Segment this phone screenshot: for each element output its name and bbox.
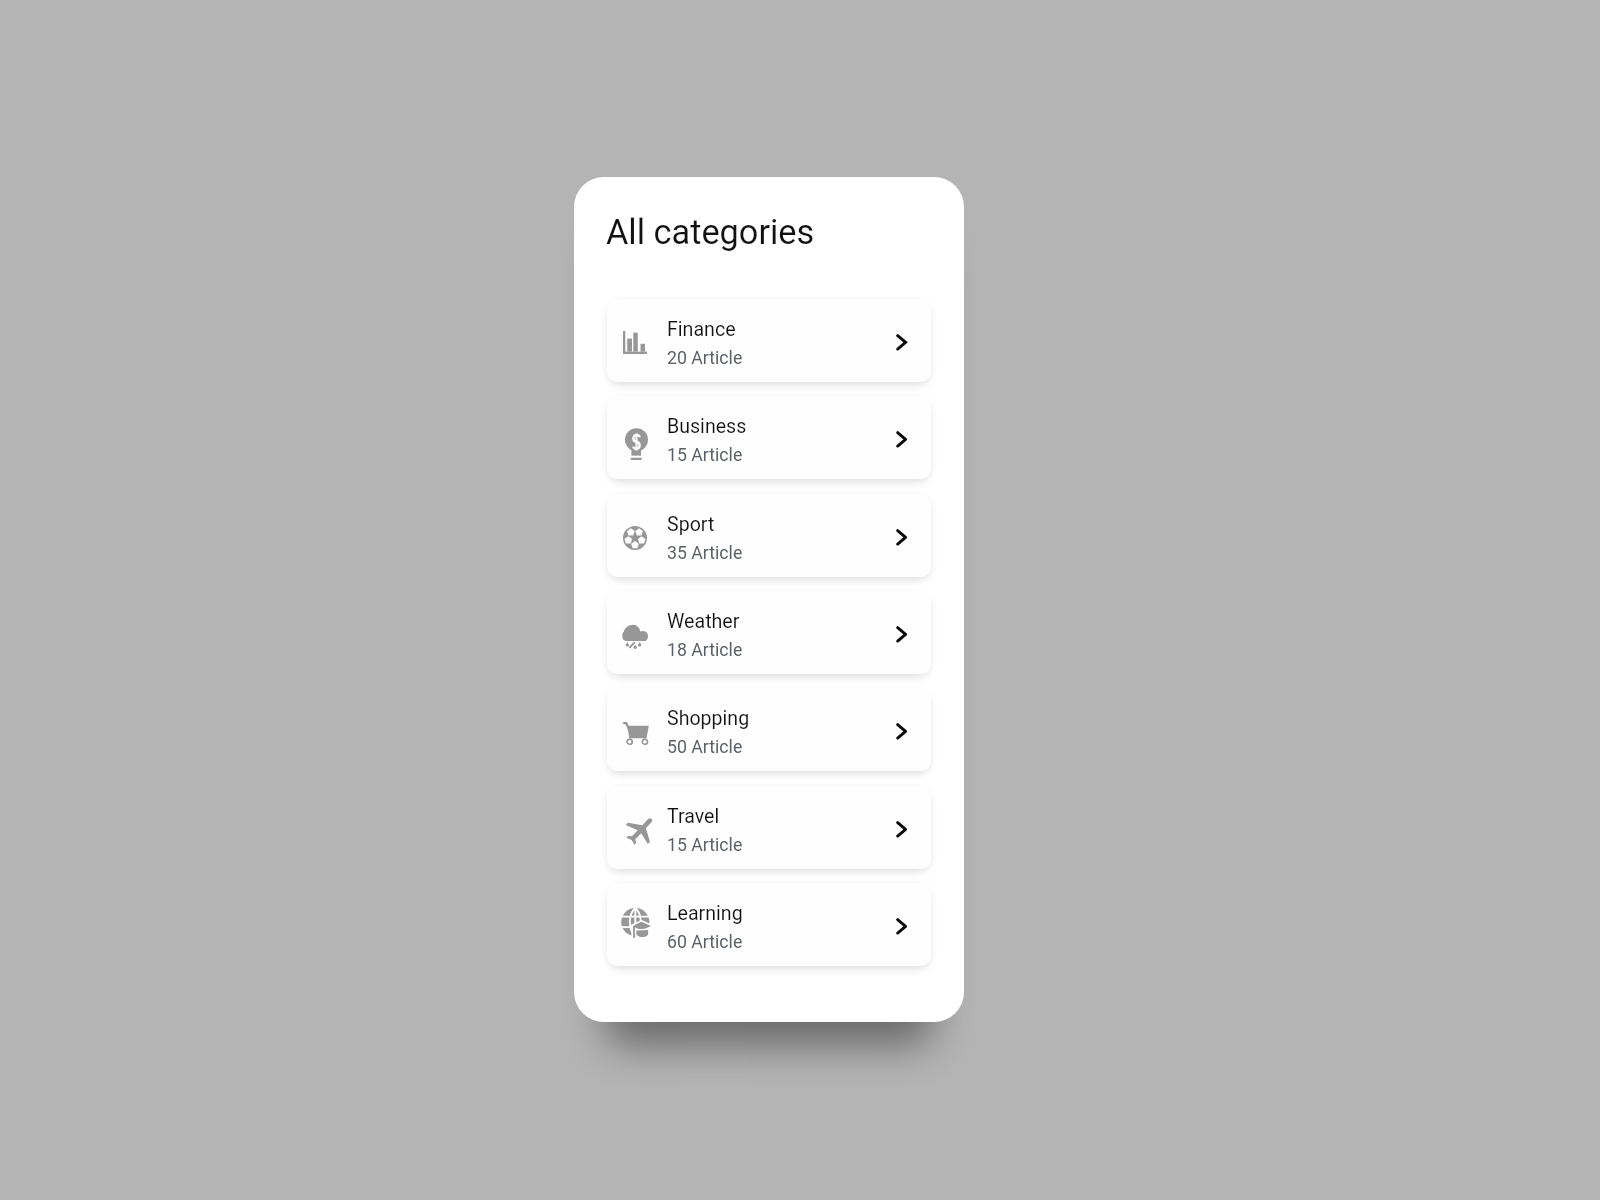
staticText: 15 Article bbox=[667, 835, 743, 856]
staticText: 18 Article bbox=[667, 640, 743, 661]
staticText: Business bbox=[667, 415, 747, 438]
staticText: Travel bbox=[667, 805, 720, 828]
staticText: Shopping bbox=[667, 707, 750, 730]
button[interactable]: Open Business bbox=[896, 431, 909, 450]
staticText: 15 Article bbox=[667, 445, 743, 466]
staticText: All categories bbox=[606, 212, 815, 252]
button[interactable]: Finance bbox=[607, 299, 931, 382]
staticText: Weather bbox=[667, 610, 740, 633]
button[interactable]: Travel bbox=[607, 786, 931, 869]
button[interactable]: Open Learning bbox=[896, 918, 909, 937]
button[interactable]: Business bbox=[607, 396, 931, 479]
button[interactable]: Shopping bbox=[607, 688, 931, 771]
button[interactable]: Learning bbox=[607, 883, 931, 966]
staticText: 60 Article bbox=[667, 932, 743, 953]
staticText: Finance bbox=[667, 318, 736, 341]
button[interactable]: Weather bbox=[607, 591, 931, 674]
button[interactable]: Open Travel bbox=[896, 821, 909, 840]
button[interactable]: Open Finance bbox=[896, 334, 909, 353]
button[interactable]: Open Sport bbox=[896, 529, 909, 548]
button[interactable]: Sport bbox=[607, 494, 931, 577]
staticText: Learning bbox=[667, 902, 743, 925]
button[interactable]: Open Weather bbox=[896, 626, 909, 645]
staticText: 20 Article bbox=[667, 348, 743, 369]
staticText: 35 Article bbox=[667, 543, 743, 564]
button[interactable]: Open Shopping bbox=[896, 723, 909, 742]
staticText: Sport bbox=[667, 513, 715, 536]
staticText: 50 Article bbox=[667, 737, 743, 758]
